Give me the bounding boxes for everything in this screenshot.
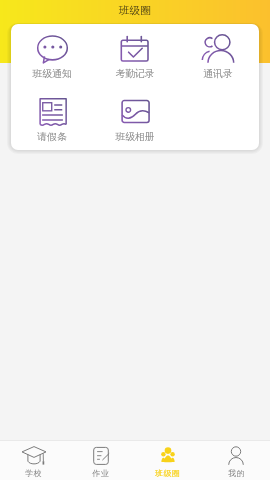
- staticText: 班级相册: [115, 131, 155, 143]
- button[interactable]: 请假条: [11, 87, 93, 150]
- staticText: 考勤记录: [115, 68, 155, 80]
- staticText: 班级圈: [155, 468, 181, 478]
- staticText: 班级圈: [119, 4, 151, 17]
- staticText: 我的: [228, 468, 245, 478]
- button[interactable]: 班级相册: [93, 87, 176, 150]
- staticText: 班级通知: [32, 68, 72, 80]
- button[interactable]: 作业: [67, 441, 134, 480]
- staticText: 学校: [25, 468, 42, 478]
- button[interactable]: 学校: [0, 441, 67, 480]
- button[interactable]: 通讯录: [176, 24, 259, 87]
- button[interactable]: 考勤记录: [93, 24, 176, 87]
- staticText: 请假条: [37, 131, 67, 143]
- button[interactable]: 我的: [202, 441, 270, 480]
- staticText: 作业: [92, 468, 109, 478]
- staticText: 通讯录: [203, 68, 233, 80]
- button[interactable]: 班级通知: [11, 24, 93, 87]
- button[interactable]: 班级圈: [134, 441, 202, 480]
